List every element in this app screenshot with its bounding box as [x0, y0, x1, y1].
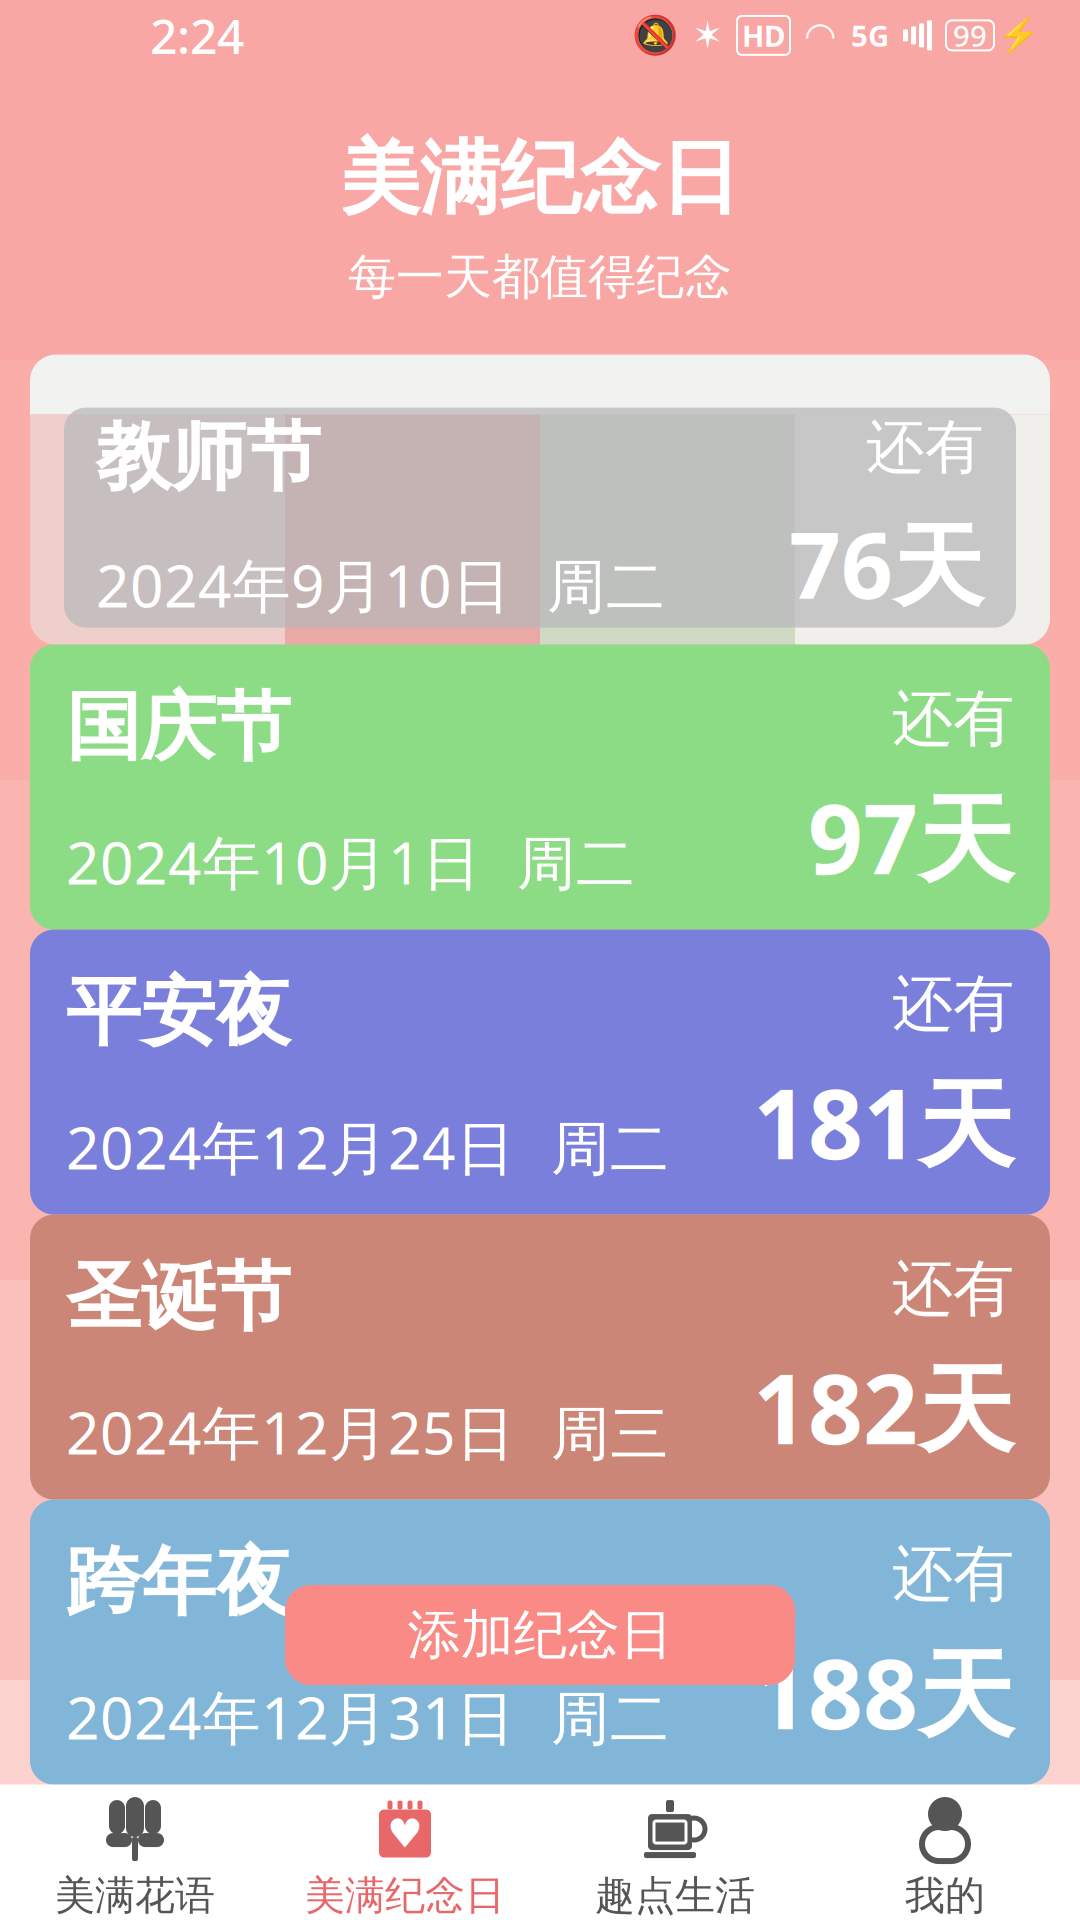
staticText: ✶	[692, 14, 723, 57]
button[interactable]: ♥	[270, 1785, 540, 1920]
staticText: ◠	[804, 14, 837, 57]
button[interactable]: 趣点生活	[540, 1785, 810, 1920]
staticText: 🔕	[632, 14, 678, 57]
staticText: 188天	[753, 1628, 1014, 1756]
staticText: 还有	[892, 1536, 1014, 1612]
staticText: 76天	[789, 503, 984, 624]
staticText: 2024年9月10日 周二	[96, 546, 665, 624]
button[interactable]: 添加纪念日	[285, 1585, 795, 1685]
button[interactable]: 我的	[810, 1785, 1080, 1920]
staticText: HD	[742, 16, 785, 55]
staticText: 还有	[866, 412, 984, 484]
staticText: 趣点生活	[595, 1871, 755, 1920]
staticText: ⚡	[997, 16, 1040, 55]
staticText: 跨年夜	[66, 1536, 291, 1628]
staticText: 添加纪念日	[407, 1602, 672, 1668]
staticText: 我的	[905, 1871, 985, 1920]
staticText: 还有	[892, 966, 1014, 1042]
staticText: 平安夜	[66, 966, 291, 1058]
staticText: 还有	[892, 681, 1014, 757]
staticText: 99	[953, 16, 987, 55]
staticText: 美满纪念日	[305, 1871, 505, 1920]
staticText: 美满花语	[55, 1871, 215, 1920]
staticText: 2024年12月24日 周二	[66, 1108, 669, 1186]
staticText: 国庆节	[66, 681, 291, 773]
staticText: 还有	[892, 1251, 1014, 1327]
staticText: 每一天都值得纪念	[348, 248, 732, 307]
staticText: 美满纪念日	[340, 129, 740, 228]
staticText: 2024年10月1日 周二	[66, 823, 635, 901]
button[interactable]: 圣诞节	[30, 1215, 1050, 1500]
button[interactable]: 教师节	[30, 355, 1050, 645]
staticText: 2024年12月25日 周三	[66, 1393, 669, 1471]
staticText: 教师节	[96, 412, 321, 503]
button[interactable]: 平安夜	[30, 930, 1050, 1215]
staticText: ♥	[387, 1811, 423, 1856]
button[interactable]: 美满花语	[0, 1785, 270, 1920]
staticText: 182天	[753, 1343, 1014, 1471]
staticText: 2:24	[150, 3, 244, 67]
staticText: 圣诞节	[66, 1251, 291, 1343]
staticText: 181天	[753, 1058, 1014, 1186]
staticText: 5G	[851, 16, 889, 55]
staticText: 97天	[808, 773, 1014, 901]
staticText: 2024年12月31日 周二	[66, 1678, 669, 1756]
button[interactable]: 跨年夜	[30, 1500, 1050, 1785]
button[interactable]: 国庆节	[30, 645, 1050, 930]
